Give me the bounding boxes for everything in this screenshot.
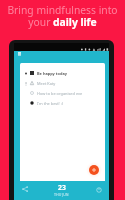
button[interactable]: I'm the best! :) — [20, 98, 105, 108]
staticText: 23 — [58, 183, 66, 192]
staticText: Bring mindfulness into your daily life — [0, 3, 125, 29]
staticText: Be happy today — [37, 71, 67, 76]
staticText: THU JUN — [54, 192, 69, 197]
button[interactable]: Be happy today — [20, 68, 105, 78]
staticText: How to be organised eve — [37, 91, 83, 96]
button[interactable]: Share — [22, 186, 28, 192]
staticText: I'm the best! :) — [37, 101, 63, 106]
staticText: Meet Katy — [37, 81, 56, 86]
button[interactable]: How to be organised eve — [20, 88, 105, 98]
button[interactable]: Settings — [96, 187, 102, 193]
button[interactable]: Add task — [89, 165, 99, 175]
button[interactable]: Menu — [18, 52, 21, 55]
button[interactable]: Meet Katy — [20, 78, 105, 88]
